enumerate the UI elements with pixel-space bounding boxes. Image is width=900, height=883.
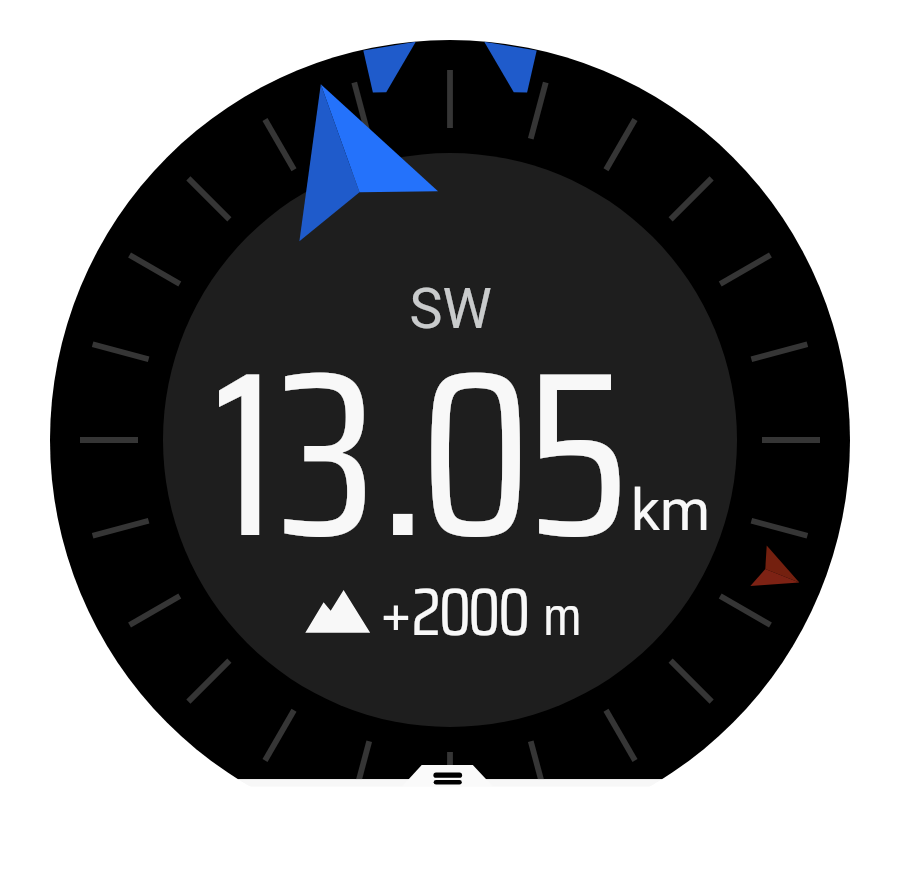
button[interactable]: Compass: heading south west, 13.05 km, a…	[0, 0, 900, 883]
